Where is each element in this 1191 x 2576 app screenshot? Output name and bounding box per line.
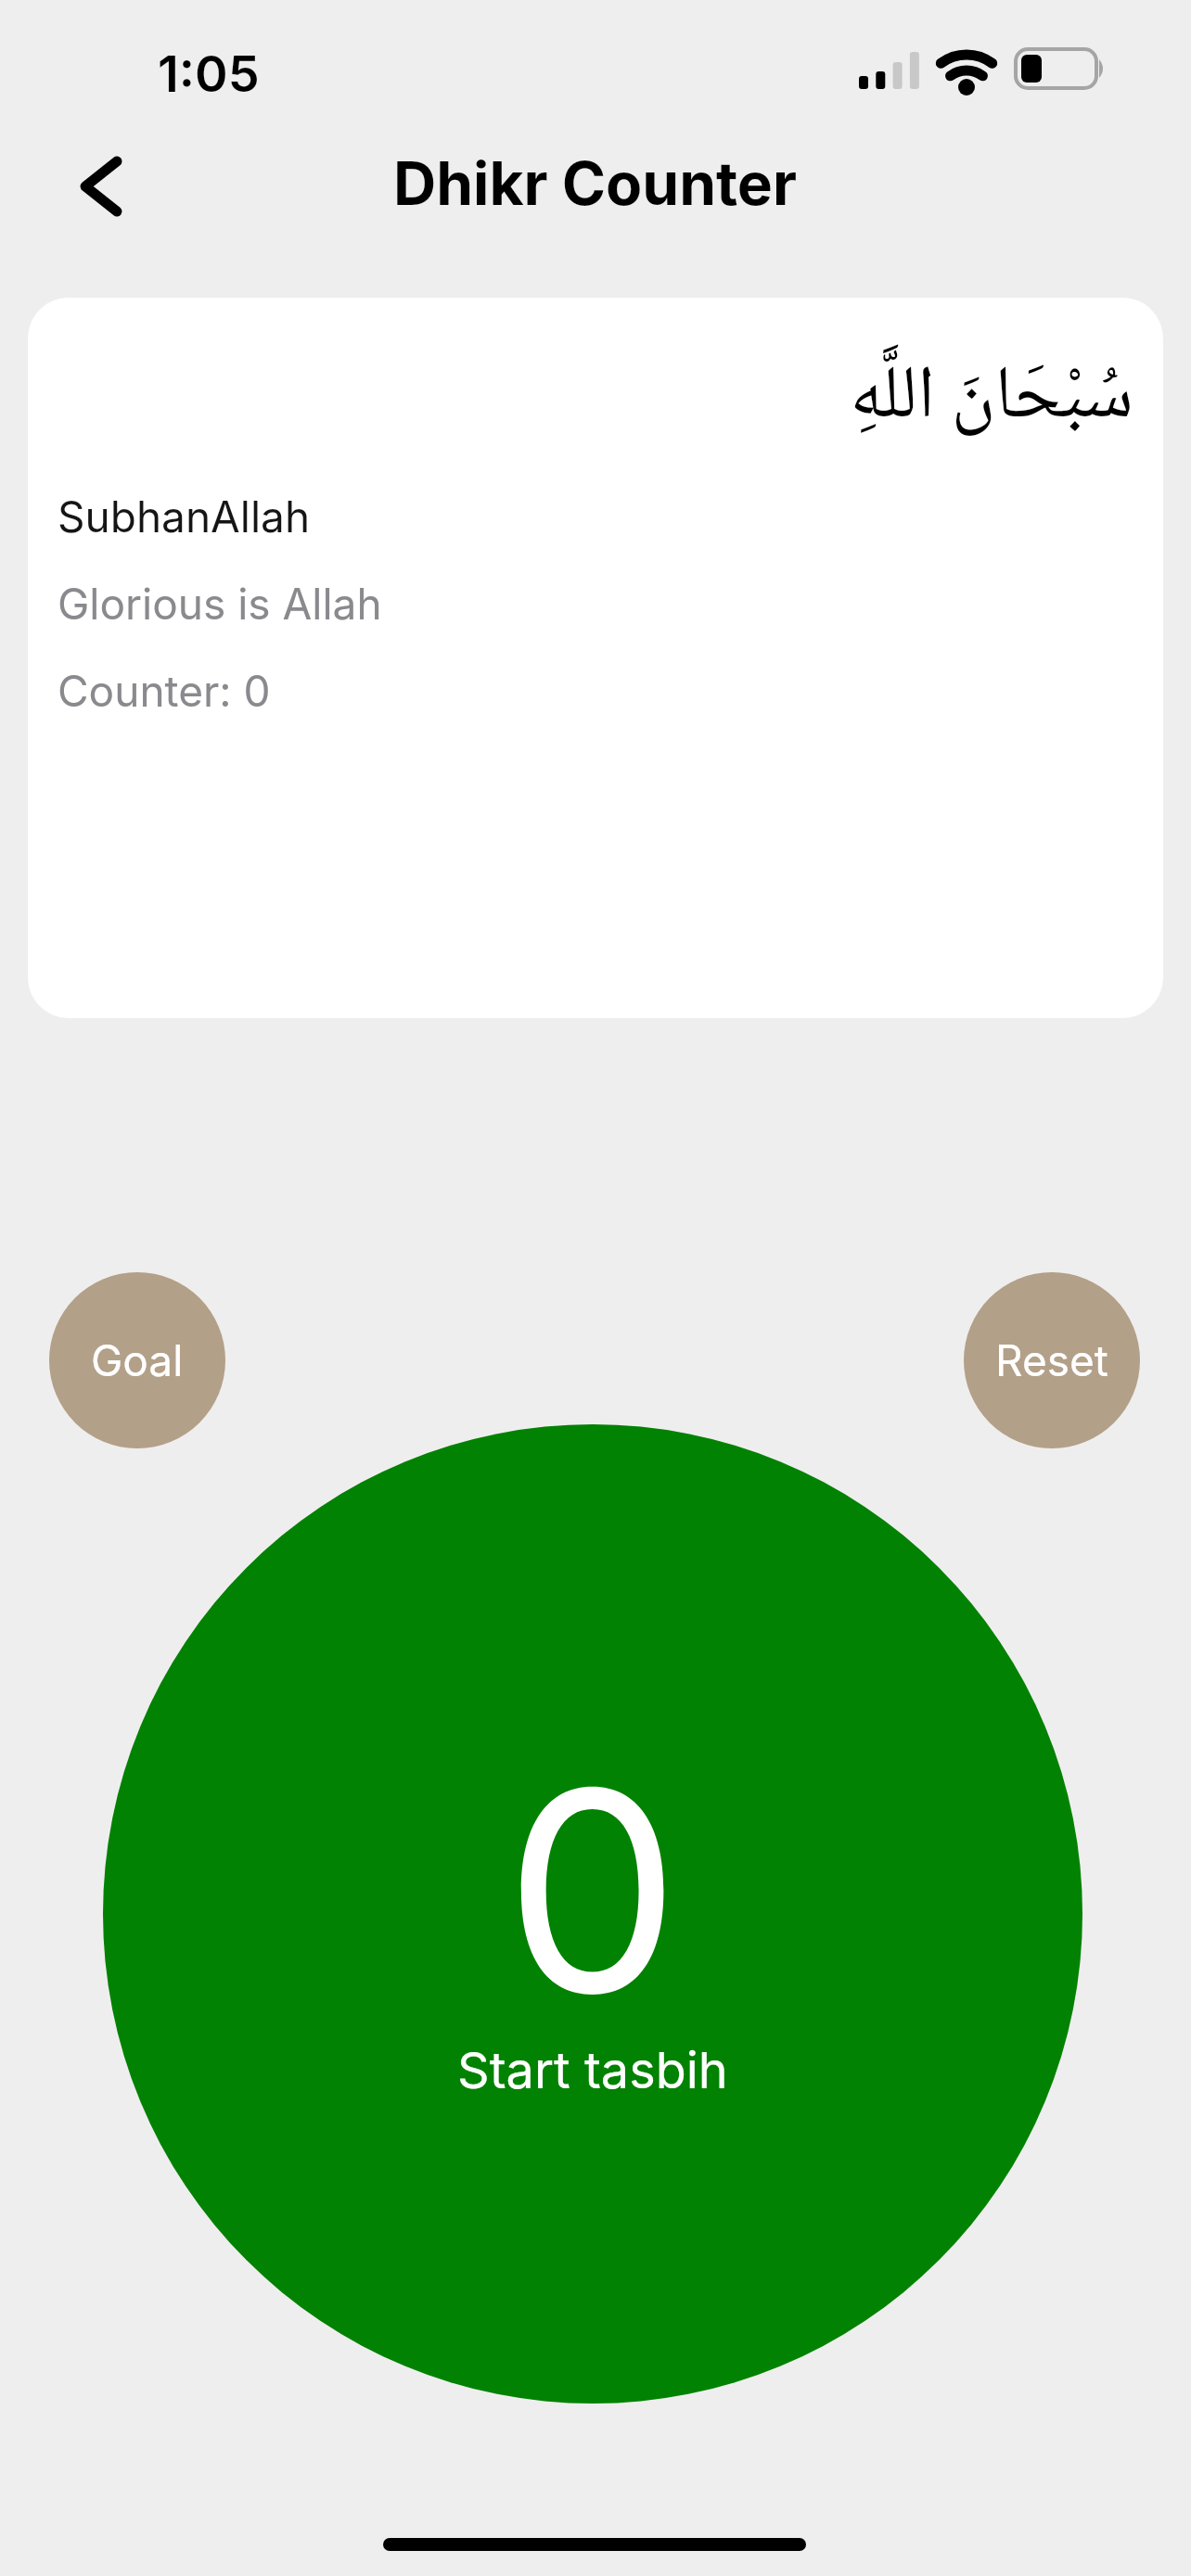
button[interactable]: Goal (49, 1272, 225, 1448)
staticText: 1:05 (158, 44, 260, 104)
staticText: Glorious is Allah (58, 578, 382, 630)
staticText: Reset (995, 1334, 1108, 1386)
staticText: 0 (505, 1722, 681, 2059)
staticText: Goal (91, 1334, 184, 1386)
button[interactable] (78, 156, 122, 217)
staticText: Counter: 0 (58, 665, 271, 717)
staticText: سُبْحَانَ اللَّهِ (850, 337, 1133, 463)
button[interactable]: 0 (103, 1424, 1082, 2404)
staticText: Start tasbih (457, 2040, 728, 2100)
staticText: Dhikr Counter (393, 147, 798, 219)
button[interactable]: Reset (964, 1272, 1140, 1448)
staticText: SubhanAllah (58, 491, 311, 542)
